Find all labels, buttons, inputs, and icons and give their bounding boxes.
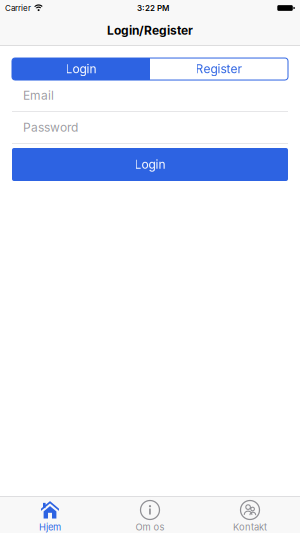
button[interactable]: Hjem (0, 497, 100, 533)
button[interactable]: Kontakt (200, 497, 300, 533)
button[interactable]: Om os (100, 497, 200, 533)
staticText: Password (23, 120, 78, 135)
staticText: Hjem (39, 521, 61, 532)
staticText: Login/Register (107, 23, 193, 38)
staticText: Kontakt (233, 521, 267, 532)
button[interactable]: Login (12, 58, 150, 80)
button[interactable]: Login (12, 148, 288, 181)
button[interactable]: Register (150, 58, 288, 80)
staticText: Register (195, 62, 242, 76)
staticText: Login (65, 62, 96, 76)
staticText: Om os (135, 521, 164, 532)
staticText: Email (23, 88, 54, 103)
staticText: Login (134, 157, 165, 172)
staticText: Carrier (5, 3, 31, 13)
staticText: 3:22 PM (137, 3, 169, 13)
